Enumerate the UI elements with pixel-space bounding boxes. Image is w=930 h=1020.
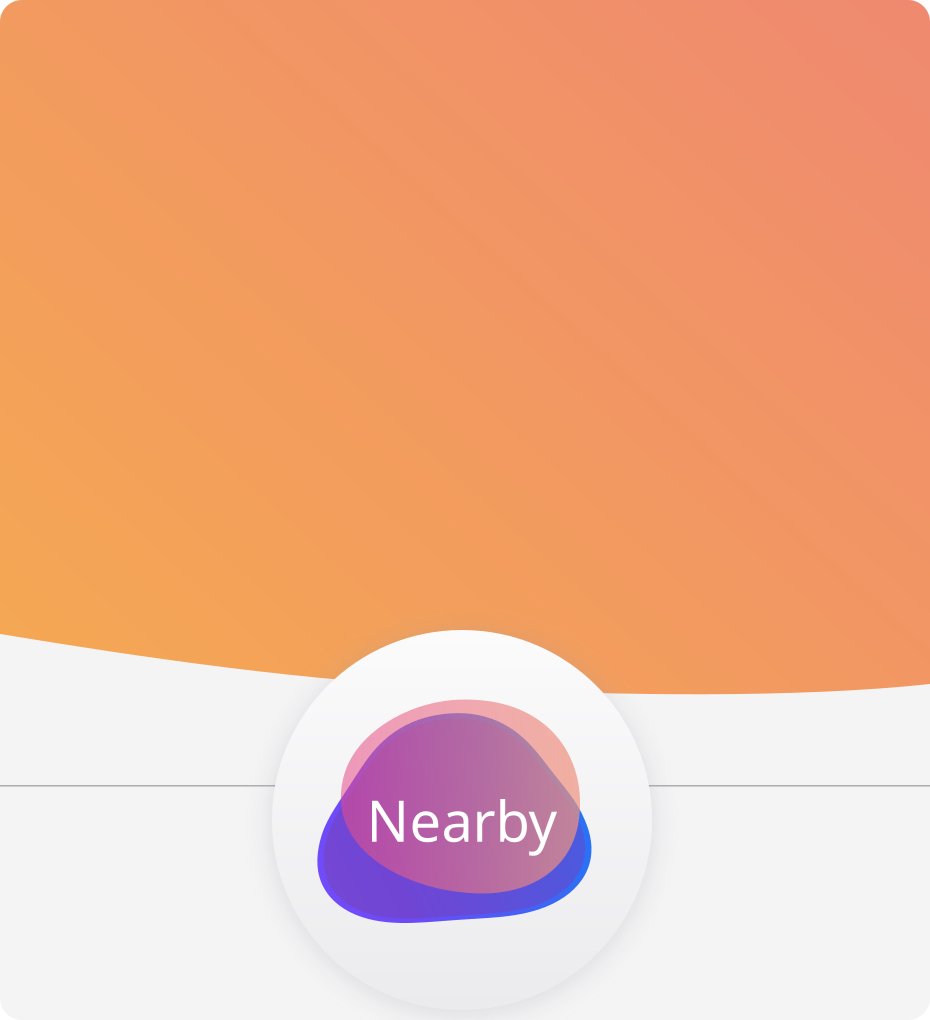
staticText: Nearby (366, 783, 557, 857)
